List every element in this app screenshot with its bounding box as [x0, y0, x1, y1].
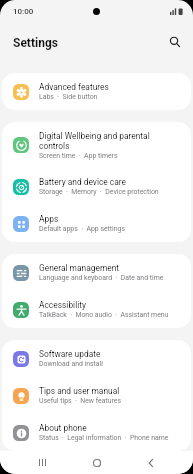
staticText: Download and install: [39, 360, 103, 368]
staticText: Labs · Side button: [39, 93, 98, 101]
staticText: General management: [39, 263, 120, 273]
button[interactable]: Accessibility: [2, 291, 191, 328]
staticText: Default apps · App settings: [39, 225, 126, 233]
button[interactable]: Home: [84, 451, 110, 474]
button[interactable]: About phone: [2, 414, 191, 451]
button[interactable]: Back: [138, 451, 164, 474]
button[interactable]: Battery and device care: [2, 168, 191, 205]
staticText: Settings: [13, 36, 58, 50]
button[interactable]: Apps: [2, 205, 191, 242]
staticText: Software update: [39, 349, 101, 359]
button[interactable]: Recents: [29, 451, 55, 474]
staticText: Tips and user manual: [39, 386, 120, 396]
button[interactable]: General management: [2, 254, 191, 291]
staticText: Advanced features: [39, 82, 109, 92]
staticText: Screen time · App timers: [39, 152, 118, 160]
staticText: Accessibility: [39, 300, 86, 310]
staticText: Battery and device care: [39, 177, 127, 187]
staticText: Digital Wellbeing and parental controls: [39, 131, 150, 151]
staticText: Language and keyboard · Date and time: [39, 274, 164, 282]
staticText: Status · Legal information · Phone name: [39, 434, 169, 442]
staticText: Apps: [39, 214, 59, 224]
button[interactable]: Advanced features: [2, 73, 191, 110]
staticText: Storage · Memory · Device protection: [39, 188, 159, 196]
staticText: TalkBack · Mono audio · Assistant menu: [39, 311, 169, 319]
staticText: 10:00: [13, 7, 34, 16]
button[interactable]: Software update: [2, 340, 191, 377]
staticText: About phone: [39, 423, 87, 433]
button[interactable]: Digital Wellbeing and parental controls: [2, 122, 191, 168]
staticText: Useful tips · New features: [39, 397, 121, 405]
button[interactable]: Search: [164, 31, 186, 53]
button[interactable]: Tips and user manual: [2, 377, 191, 414]
